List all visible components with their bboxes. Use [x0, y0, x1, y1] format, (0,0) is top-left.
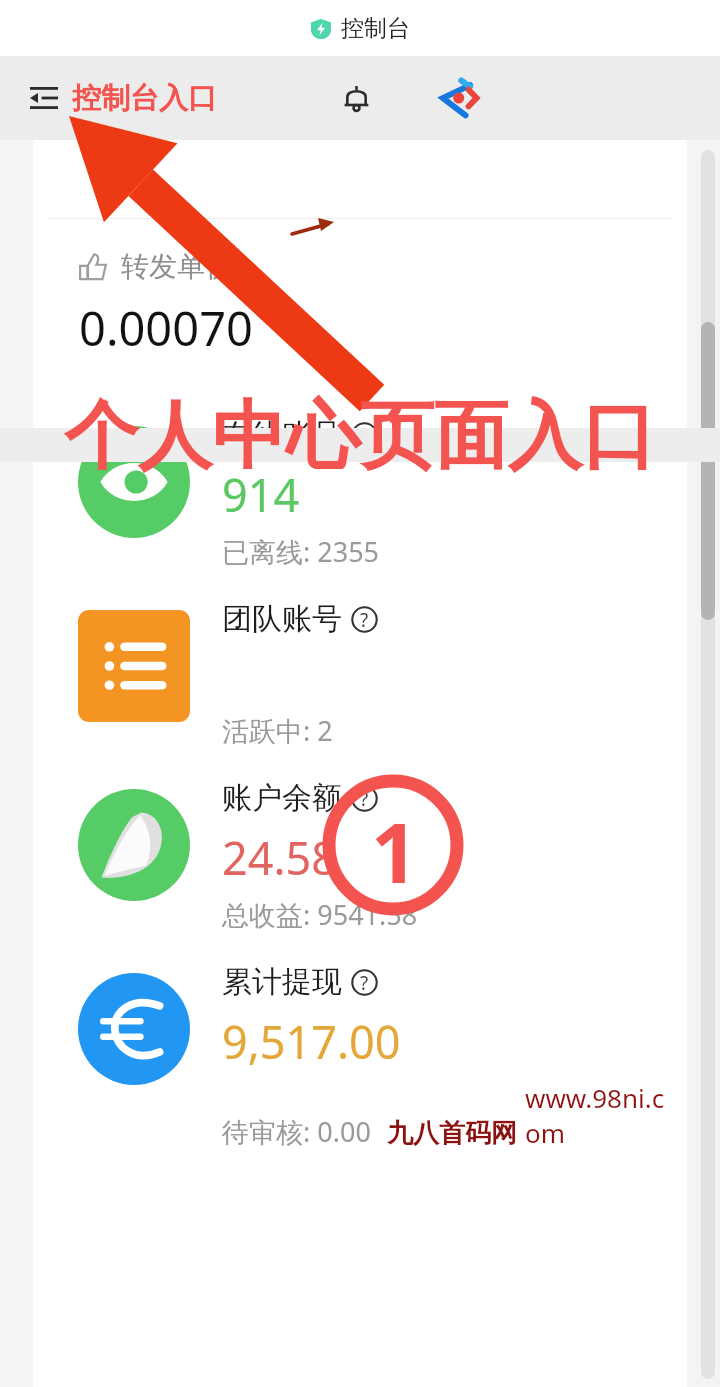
staticText: 9,517.00 [222, 1011, 401, 1072]
button[interactable]: 账户余额 [33, 779, 687, 933]
staticText: ? [360, 607, 369, 633]
staticText: 账户余额 [222, 779, 342, 817]
button[interactable]: 团队账号 [33, 600, 687, 749]
staticText: 待审核: 0.00 [222, 1113, 371, 1150]
staticText: 团队账号 [222, 600, 342, 638]
staticText: 个人中心页面入口 [0, 390, 720, 483]
staticText: 1 [371, 795, 418, 907]
staticText: www.98ni.com [525, 1080, 679, 1150]
staticText: ? [360, 970, 369, 996]
button[interactable]: App logo [430, 68, 490, 128]
staticText: 914 [222, 464, 300, 525]
staticText: 控制台入口 [72, 80, 217, 117]
button[interactable]: 控制台入口 [72, 80, 217, 117]
staticText: ? [360, 423, 369, 449]
staticText: 累计提现 [222, 963, 342, 1001]
button[interactable]: 在线账号 [33, 416, 687, 570]
staticText: 0.00070 [79, 296, 253, 360]
staticText: 活跃中: 2 [222, 712, 333, 749]
staticText: ? [360, 786, 369, 812]
staticText: 在线账号 [222, 416, 342, 454]
staticText: 转发单价 [121, 249, 233, 284]
staticText: 已离线: 2355 [222, 533, 380, 570]
staticText: 控制台 [341, 14, 410, 43]
staticText: 总收益: 9541.58 [222, 896, 418, 933]
button[interactable]: Collapse menu [20, 74, 68, 122]
button[interactable]: 累计提现 [33, 963, 687, 1150]
staticText: 24.58 [222, 827, 338, 888]
button[interactable]: Notifications [330, 72, 382, 124]
staticText: 九八首码网 [387, 1117, 517, 1150]
